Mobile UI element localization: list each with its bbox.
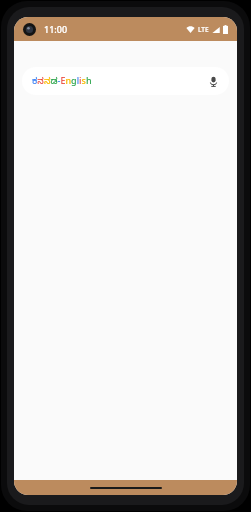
staticText: 11:00 [44,23,68,35]
button[interactable]: Home gesture [90,487,162,489]
button[interactable]: Voice search [203,71,223,91]
staticText: ಕನನಡ-English [32,74,92,88]
staticText: LTE [198,25,209,34]
button[interactable]: ಕನನಡ-English [22,67,229,95]
